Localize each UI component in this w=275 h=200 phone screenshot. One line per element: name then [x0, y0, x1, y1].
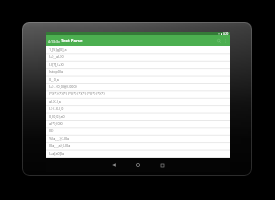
- staticText: (*)(*) (*)(*) (*)(*) (*)(*) (*)(*) (*)(*…: [49, 91, 105, 96]
- button[interactable]: 0,(0,0),a0: [46, 113, 230, 120]
- button[interactable]: Back: [108, 159, 120, 171]
- button[interactable]: Home: [132, 159, 144, 171]
- button[interactable]: (0): [46, 127, 230, 134]
- staticText: (+)_,a(-)0: [49, 54, 64, 59]
- staticText: (0a,__a),(-)0a: [49, 143, 71, 148]
- button[interactable]: %(a,__),(-)0a: [46, 135, 230, 142]
- staticText: 4:20: [223, 32, 229, 35]
- staticText: a(*),(0)0: [49, 121, 63, 126]
- staticText: (+a[a0])a: [49, 151, 65, 156]
- button[interactable]: More options: [222, 37, 229, 44]
- staticText: a(-)(-),a: [49, 99, 61, 104]
- staticText: Text Parse: [61, 38, 83, 44]
- button[interactable]: Recent apps: [156, 159, 168, 171]
- button[interactable]: a(*),(0)0: [46, 120, 230, 127]
- staticText: (stop0)a: [49, 69, 63, 74]
- staticText: (0): [49, 128, 54, 133]
- staticText: 1,[5]g[0],a: [49, 47, 67, 52]
- button[interactable]: (-) (-)(-),0: [46, 105, 230, 112]
- staticText: %(a,__),(-)0a: [49, 136, 70, 141]
- button[interactable]: (+)_,a(-)0: [46, 53, 230, 60]
- button[interactable]: 1,[5]g[0],a: [46, 46, 230, 53]
- staticText: 0,_0,a: [49, 77, 59, 82]
- button[interactable]: (stop0)a: [46, 68, 230, 75]
- staticText: (-) (-)(-),0: [49, 106, 64, 111]
- button[interactable]: (.)[?],(+)0: [46, 61, 230, 68]
- button[interactable]: (0a,__a),(-)0a: [46, 142, 230, 149]
- button[interactable]: (+) - (0,0)@(.000): [46, 83, 230, 90]
- button[interactable]: Search: [215, 37, 222, 44]
- staticText: 4:13:3c: [48, 39, 60, 44]
- staticText: 0,(0,0),a0: [49, 114, 65, 119]
- staticText: (+) - (0,0)@(.000): [49, 84, 77, 89]
- button[interactable]: a(-)(-),a: [46, 98, 230, 105]
- button[interactable]: 4:13:3c: [46, 35, 230, 46]
- button[interactable]: (+a[a0])a: [46, 150, 230, 157]
- button[interactable]: 0,_0,a: [46, 76, 230, 83]
- button[interactable]: (*)(*) (*)(*) (*)(*) (*)(*) (*)(*) (*)(*…: [46, 90, 230, 97]
- staticText: (.)[?],(+)0: [49, 62, 64, 67]
